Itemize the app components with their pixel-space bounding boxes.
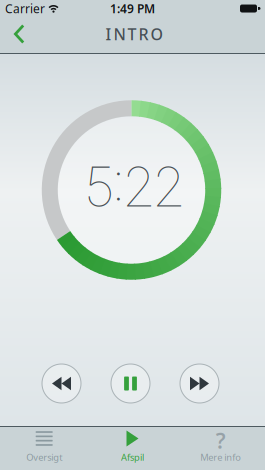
staticText: Mere info <box>200 451 241 463</box>
staticText: 5:22 <box>84 153 186 219</box>
button[interactable]: Fast forward <box>180 364 219 403</box>
staticText: Afspil <box>121 451 144 463</box>
button[interactable]: Rewind <box>42 364 81 403</box>
staticText: I N T R O <box>105 23 163 45</box>
button[interactable]: Afspil <box>88 427 177 463</box>
staticText: ? <box>216 426 226 455</box>
button[interactable]: Back <box>0 17 25 52</box>
button[interactable]: ? <box>177 427 265 463</box>
staticText: 1:49 PM <box>110 0 155 16</box>
button[interactable]: Oversigt <box>0 427 88 463</box>
staticText: Carrier <box>5 0 45 16</box>
staticText: Oversigt <box>26 451 62 463</box>
button[interactable]: Pause <box>111 364 150 403</box>
